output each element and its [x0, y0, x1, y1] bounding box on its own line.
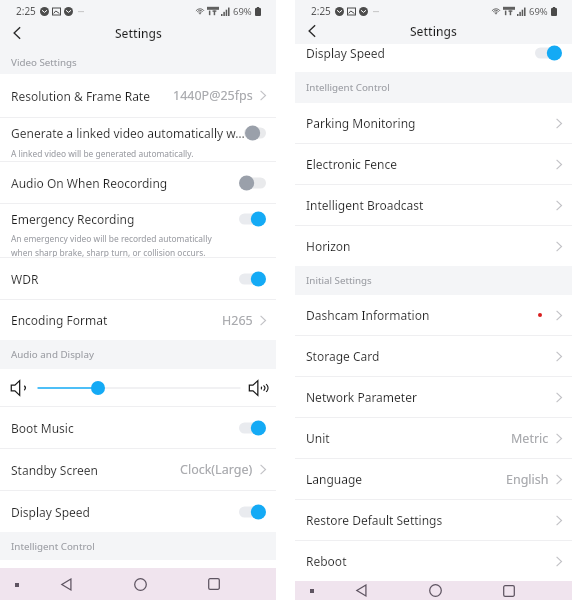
button[interactable]: WDR [0, 258, 276, 299]
button[interactable]: Language [295, 459, 572, 499]
staticText: Standby Screen [11, 462, 180, 478]
button[interactable]: Home [422, 581, 448, 600]
button[interactable]: Unit [295, 418, 572, 458]
button[interactable]: Reboot [295, 541, 572, 581]
staticText: English [506, 471, 549, 488]
staticText: Intelligent Control [306, 81, 390, 94]
staticText: Audio On When Reocording [11, 175, 239, 191]
staticText: Emergency Recording [11, 211, 239, 227]
button[interactable]: Home [127, 571, 153, 597]
button[interactable]: Intelligent Broadcast [295, 185, 572, 225]
staticText: Display Speed [306, 45, 535, 61]
staticText: Dashcam Information [306, 307, 538, 323]
staticText: Generate a linked video automatically w… [11, 125, 245, 141]
button[interactable]: Network Parameter [295, 377, 572, 417]
button[interactable]: Recents [201, 571, 227, 597]
button[interactable]: Electronic Fence [295, 144, 572, 184]
button[interactable]: Toggle [239, 175, 266, 191]
button[interactable]: Back [299, 20, 325, 42]
staticText: 2:25 [16, 4, 36, 18]
staticText: Display Speed [11, 504, 239, 520]
button[interactable]: Display Speed [0, 491, 276, 532]
staticText: Boot Music [11, 420, 239, 436]
staticText: Reboot [306, 553, 556, 569]
button[interactable]: Generate a linked video automatically w… [0, 118, 276, 148]
staticText: Audio and Display [11, 348, 94, 361]
button[interactable]: Encoding Format [0, 300, 276, 340]
button[interactable]: Recents [496, 581, 522, 600]
staticText: Initial Settings [306, 274, 372, 287]
button[interactable]: Toggle [239, 420, 266, 436]
button[interactable]: Back [53, 571, 79, 597]
button[interactable]: Back [4, 20, 30, 46]
staticText: Encoding Format [11, 312, 222, 328]
button[interactable]: Toggle [535, 45, 562, 61]
staticText: Storage Card [306, 348, 556, 364]
button[interactable]: Horizon [295, 226, 572, 266]
button[interactable]: Boot Music [0, 407, 276, 448]
button[interactable]: Standby Screen [0, 449, 276, 490]
staticText: 69% [529, 5, 548, 18]
staticText: WDR [11, 271, 239, 287]
button[interactable]: Parking Monitoring [295, 103, 572, 143]
staticText: Language [306, 471, 506, 487]
button[interactable]: Restore Default Settings [295, 500, 572, 540]
staticText: Horizon [306, 238, 556, 254]
button[interactable]: Audio On When Reocording [0, 162, 276, 203]
staticText: Parking Monitoring [306, 115, 556, 131]
staticText: Resolution & Frame Rate [11, 88, 173, 104]
button[interactable]: Toggle [239, 504, 266, 520]
staticText: Metric [511, 430, 549, 447]
staticText: 69% [233, 5, 252, 18]
button[interactable]: Storage Card [295, 336, 572, 376]
button[interactable]: Back [348, 581, 374, 600]
button[interactable]: Emergency Recording [0, 204, 276, 233]
staticText: Settings [410, 23, 457, 39]
staticText: when sharp brake, sharp turn, or collisi… [11, 247, 206, 257]
button[interactable]: Dashcam Information [295, 295, 572, 335]
staticText: Network Parameter [306, 389, 556, 405]
button[interactable]: Toggle [245, 125, 266, 141]
staticText: A linked video will be generated automat… [11, 148, 194, 159]
staticText: H265 [222, 312, 253, 329]
button[interactable]: Hide navigation bar [9, 577, 24, 592]
staticText: Electronic Fence [306, 156, 556, 172]
staticText: Clock(Large) [180, 461, 253, 478]
staticText: Restore Default Settings [306, 512, 556, 528]
staticText: Settings [115, 25, 162, 41]
staticText: 1440P@25fps [173, 87, 253, 104]
staticText: An emergency video will be recorded auto… [11, 233, 212, 244]
staticText: 2:25 [311, 4, 331, 18]
button[interactable]: Toggle [239, 271, 266, 287]
button[interactable]: Volume [38, 381, 240, 395]
button[interactable]: Toggle [239, 211, 266, 227]
button[interactable]: Hide navigation bar [304, 583, 319, 598]
button[interactable]: Resolution & Frame Rate [0, 74, 276, 117]
staticText: Intelligent Broadcast [306, 197, 556, 213]
staticText: Intelligent Control [11, 540, 95, 553]
staticText: Video Settings [11, 56, 77, 69]
staticText: Unit [306, 430, 511, 446]
button[interactable]: Display Speed [295, 44, 572, 72]
